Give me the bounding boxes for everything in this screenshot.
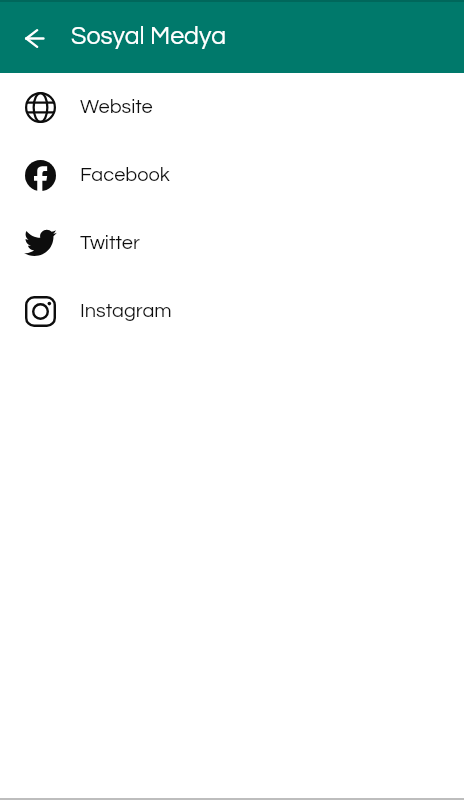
button[interactable]: Website [0,73,464,141]
button[interactable]: Facebook [0,141,464,209]
staticText: Facebook [80,165,170,186]
staticText: Instagram [80,301,172,322]
button[interactable]: Twitter [0,209,464,277]
staticText: Sosyal Medya [71,23,227,49]
button[interactable]: Back [10,14,58,62]
button[interactable]: Instagram [0,277,464,345]
staticText: Twitter [80,233,140,254]
staticText: Website [80,97,153,118]
